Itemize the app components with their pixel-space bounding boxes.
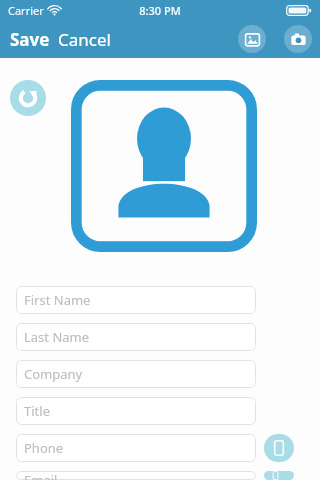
button[interactable]: Email bbox=[16, 471, 256, 480]
button[interactable]: Take photo bbox=[284, 25, 312, 53]
staticText: Cancel bbox=[58, 28, 111, 51]
button[interactable]: Rotate bbox=[10, 80, 46, 116]
button[interactable]: Save bbox=[0, 22, 54, 57]
button[interactable]: Choose photo bbox=[238, 25, 266, 53]
staticText: Phone bbox=[24, 439, 64, 457]
button[interactable]: Phone bbox=[16, 434, 256, 462]
staticText: 8:30 PM bbox=[139, 3, 181, 18]
staticText: Last Name bbox=[24, 328, 90, 346]
button[interactable]: Title bbox=[16, 397, 256, 425]
staticText: First Name bbox=[24, 291, 91, 309]
staticText: Carrier bbox=[8, 3, 44, 18]
button[interactable]: Last Name bbox=[16, 323, 256, 351]
button[interactable]: Phone type bbox=[264, 434, 294, 462]
button[interactable]: Email type bbox=[264, 471, 294, 480]
button[interactable]: First Name bbox=[16, 286, 256, 314]
staticText: Email bbox=[24, 471, 58, 480]
button[interactable]: Contact photo bbox=[71, 80, 257, 252]
button[interactable]: Cancel bbox=[54, 22, 115, 57]
button[interactable]: Company bbox=[16, 360, 256, 388]
staticText: Title bbox=[24, 402, 50, 420]
staticText: Company bbox=[24, 365, 83, 383]
staticText: Save bbox=[10, 28, 50, 51]
